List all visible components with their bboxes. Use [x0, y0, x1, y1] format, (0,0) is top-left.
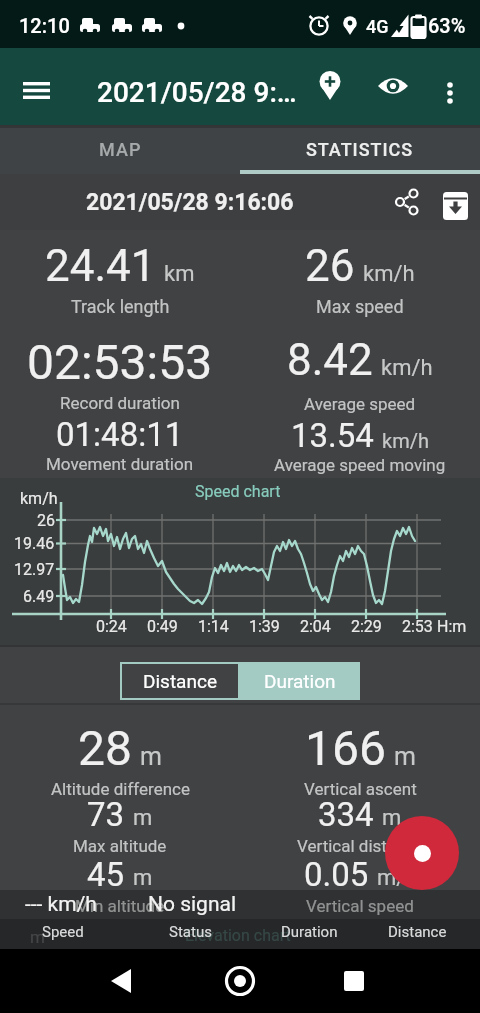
- staticText: 24.41: [45, 240, 156, 292]
- staticText: 02:53:53: [27, 334, 213, 390]
- staticText: 01:48:11: [56, 415, 184, 454]
- staticText: m: [133, 805, 153, 831]
- staticText: km/h: [363, 261, 415, 287]
- staticText: Speed chart: [195, 482, 281, 501]
- staticText: km/h: [20, 489, 58, 508]
- staticText: 26: [37, 511, 55, 530]
- staticText: 166: [305, 720, 386, 776]
- staticText: 13.54: [291, 416, 374, 455]
- button[interactable]: Distance: [367, 923, 467, 941]
- staticText: Elevation chart: [185, 926, 291, 945]
- staticText: km/h: [382, 429, 429, 452]
- staticText: Duration: [264, 670, 336, 692]
- staticText: Movement duration: [46, 454, 194, 474]
- button[interactable]: [369, 62, 417, 110]
- button[interactable]: [12, 66, 60, 114]
- staticText: 73: [87, 795, 125, 834]
- staticText: Vertical speed: [306, 896, 414, 915]
- staticText: 0:24: [96, 617, 127, 636]
- staticText: Speed: [42, 923, 84, 941]
- staticText: Distance: [143, 670, 217, 692]
- staticText: Record duration: [60, 393, 180, 413]
- staticText: Average speed moving: [274, 455, 446, 475]
- staticText: 12:10: [19, 14, 70, 37]
- button[interactable]: [322, 949, 386, 1013]
- staticText: 28: [78, 720, 132, 776]
- staticText: km: [164, 261, 195, 287]
- staticText: m: [382, 805, 402, 831]
- staticText: 1:39: [249, 617, 280, 636]
- staticText: Vertical distance: [297, 836, 424, 855]
- button[interactable]: STATISTICS: [240, 125, 480, 174]
- staticText: 6.49: [23, 587, 55, 606]
- staticText: 2021/05/28 9:…: [97, 76, 297, 109]
- button[interactable]: MAP: [0, 125, 240, 174]
- staticText: m/s: [377, 865, 417, 891]
- staticText: MAP: [99, 139, 142, 160]
- staticText: No signal: [148, 892, 237, 917]
- staticText: 334: [318, 795, 374, 834]
- staticText: Altitude difference: [51, 779, 190, 795]
- button[interactable]: [385, 816, 459, 890]
- staticText: 45: [87, 855, 125, 894]
- staticText: 12.97: [14, 560, 55, 579]
- staticText: Duration: [281, 923, 338, 941]
- staticText: 2:04: [300, 617, 331, 636]
- button[interactable]: Speed: [13, 923, 113, 941]
- button[interactable]: Duration: [240, 662, 360, 700]
- button[interactable]: Status: [140, 923, 240, 941]
- staticText: Distance: [388, 923, 447, 941]
- staticText: 1:14: [198, 617, 229, 636]
- button[interactable]: [89, 949, 153, 1013]
- staticText: km/h: [381, 355, 433, 381]
- button[interactable]: [383, 178, 431, 226]
- staticText: 26: [305, 240, 355, 292]
- staticText: m: [394, 742, 416, 771]
- staticText: Max speed: [316, 296, 404, 317]
- staticText: Status: [169, 923, 212, 941]
- staticText: 2:29: [351, 617, 382, 636]
- staticText: H:m: [437, 617, 467, 636]
- button[interactable]: [431, 182, 479, 230]
- staticText: 19.46: [14, 534, 55, 553]
- staticText: Min altitude: [75, 896, 165, 915]
- staticText: --- km/h: [25, 892, 97, 917]
- staticText: 2021/05/28 9:16:06: [86, 189, 294, 216]
- staticText: 63%: [428, 14, 466, 37]
- staticText: m: [30, 927, 45, 947]
- button[interactable]: Duration: [259, 923, 359, 941]
- staticText: Track length: [71, 296, 170, 317]
- staticText: 4G: [366, 16, 389, 37]
- staticText: m: [133, 865, 153, 891]
- staticText: 8.42: [287, 334, 373, 386]
- staticText: Max altitude: [73, 836, 167, 855]
- staticText: STATISTICS: [306, 139, 414, 160]
- button[interactable]: [306, 62, 354, 110]
- staticText: Average speed: [304, 394, 416, 414]
- staticText: m: [140, 742, 162, 771]
- button[interactable]: [208, 949, 272, 1013]
- button[interactable]: Distance: [120, 662, 240, 700]
- staticText: Vertical ascent: [304, 779, 417, 795]
- staticText: 0.05: [304, 855, 369, 894]
- button[interactable]: [426, 69, 474, 117]
- staticText: 0:49: [147, 617, 178, 636]
- staticText: 2:53: [402, 617, 433, 636]
